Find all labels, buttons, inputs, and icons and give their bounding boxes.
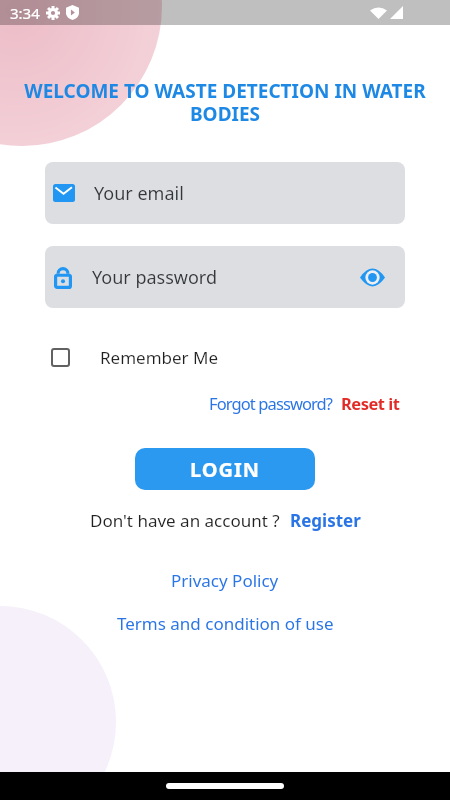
button[interactable]: Privacy Policy	[171, 569, 279, 592]
button[interactable]: Register	[290, 509, 361, 532]
button[interactable]: Terms and condition of use	[117, 612, 334, 635]
button[interactable]: Your email	[45, 162, 405, 224]
staticText: Remember Me	[100, 346, 219, 369]
staticText: Your password	[92, 265, 218, 290]
staticText: 3:34	[10, 3, 40, 23]
button[interactable]: Remember Me	[52, 346, 219, 369]
staticText: LOGIN	[190, 456, 261, 483]
button[interactable]: Your password	[45, 246, 405, 308]
button[interactable]: LOGIN	[135, 448, 315, 490]
staticText: Don't have an account ?	[90, 509, 280, 532]
button[interactable]	[360, 269, 385, 286]
staticText: Your email	[94, 181, 184, 206]
staticText: WELCOME TO WASTE DETECTION IN WATER BODI…	[0, 78, 450, 127]
button[interactable]: Reset it	[341, 392, 400, 414]
button[interactable]: Forgot password?	[209, 392, 333, 414]
